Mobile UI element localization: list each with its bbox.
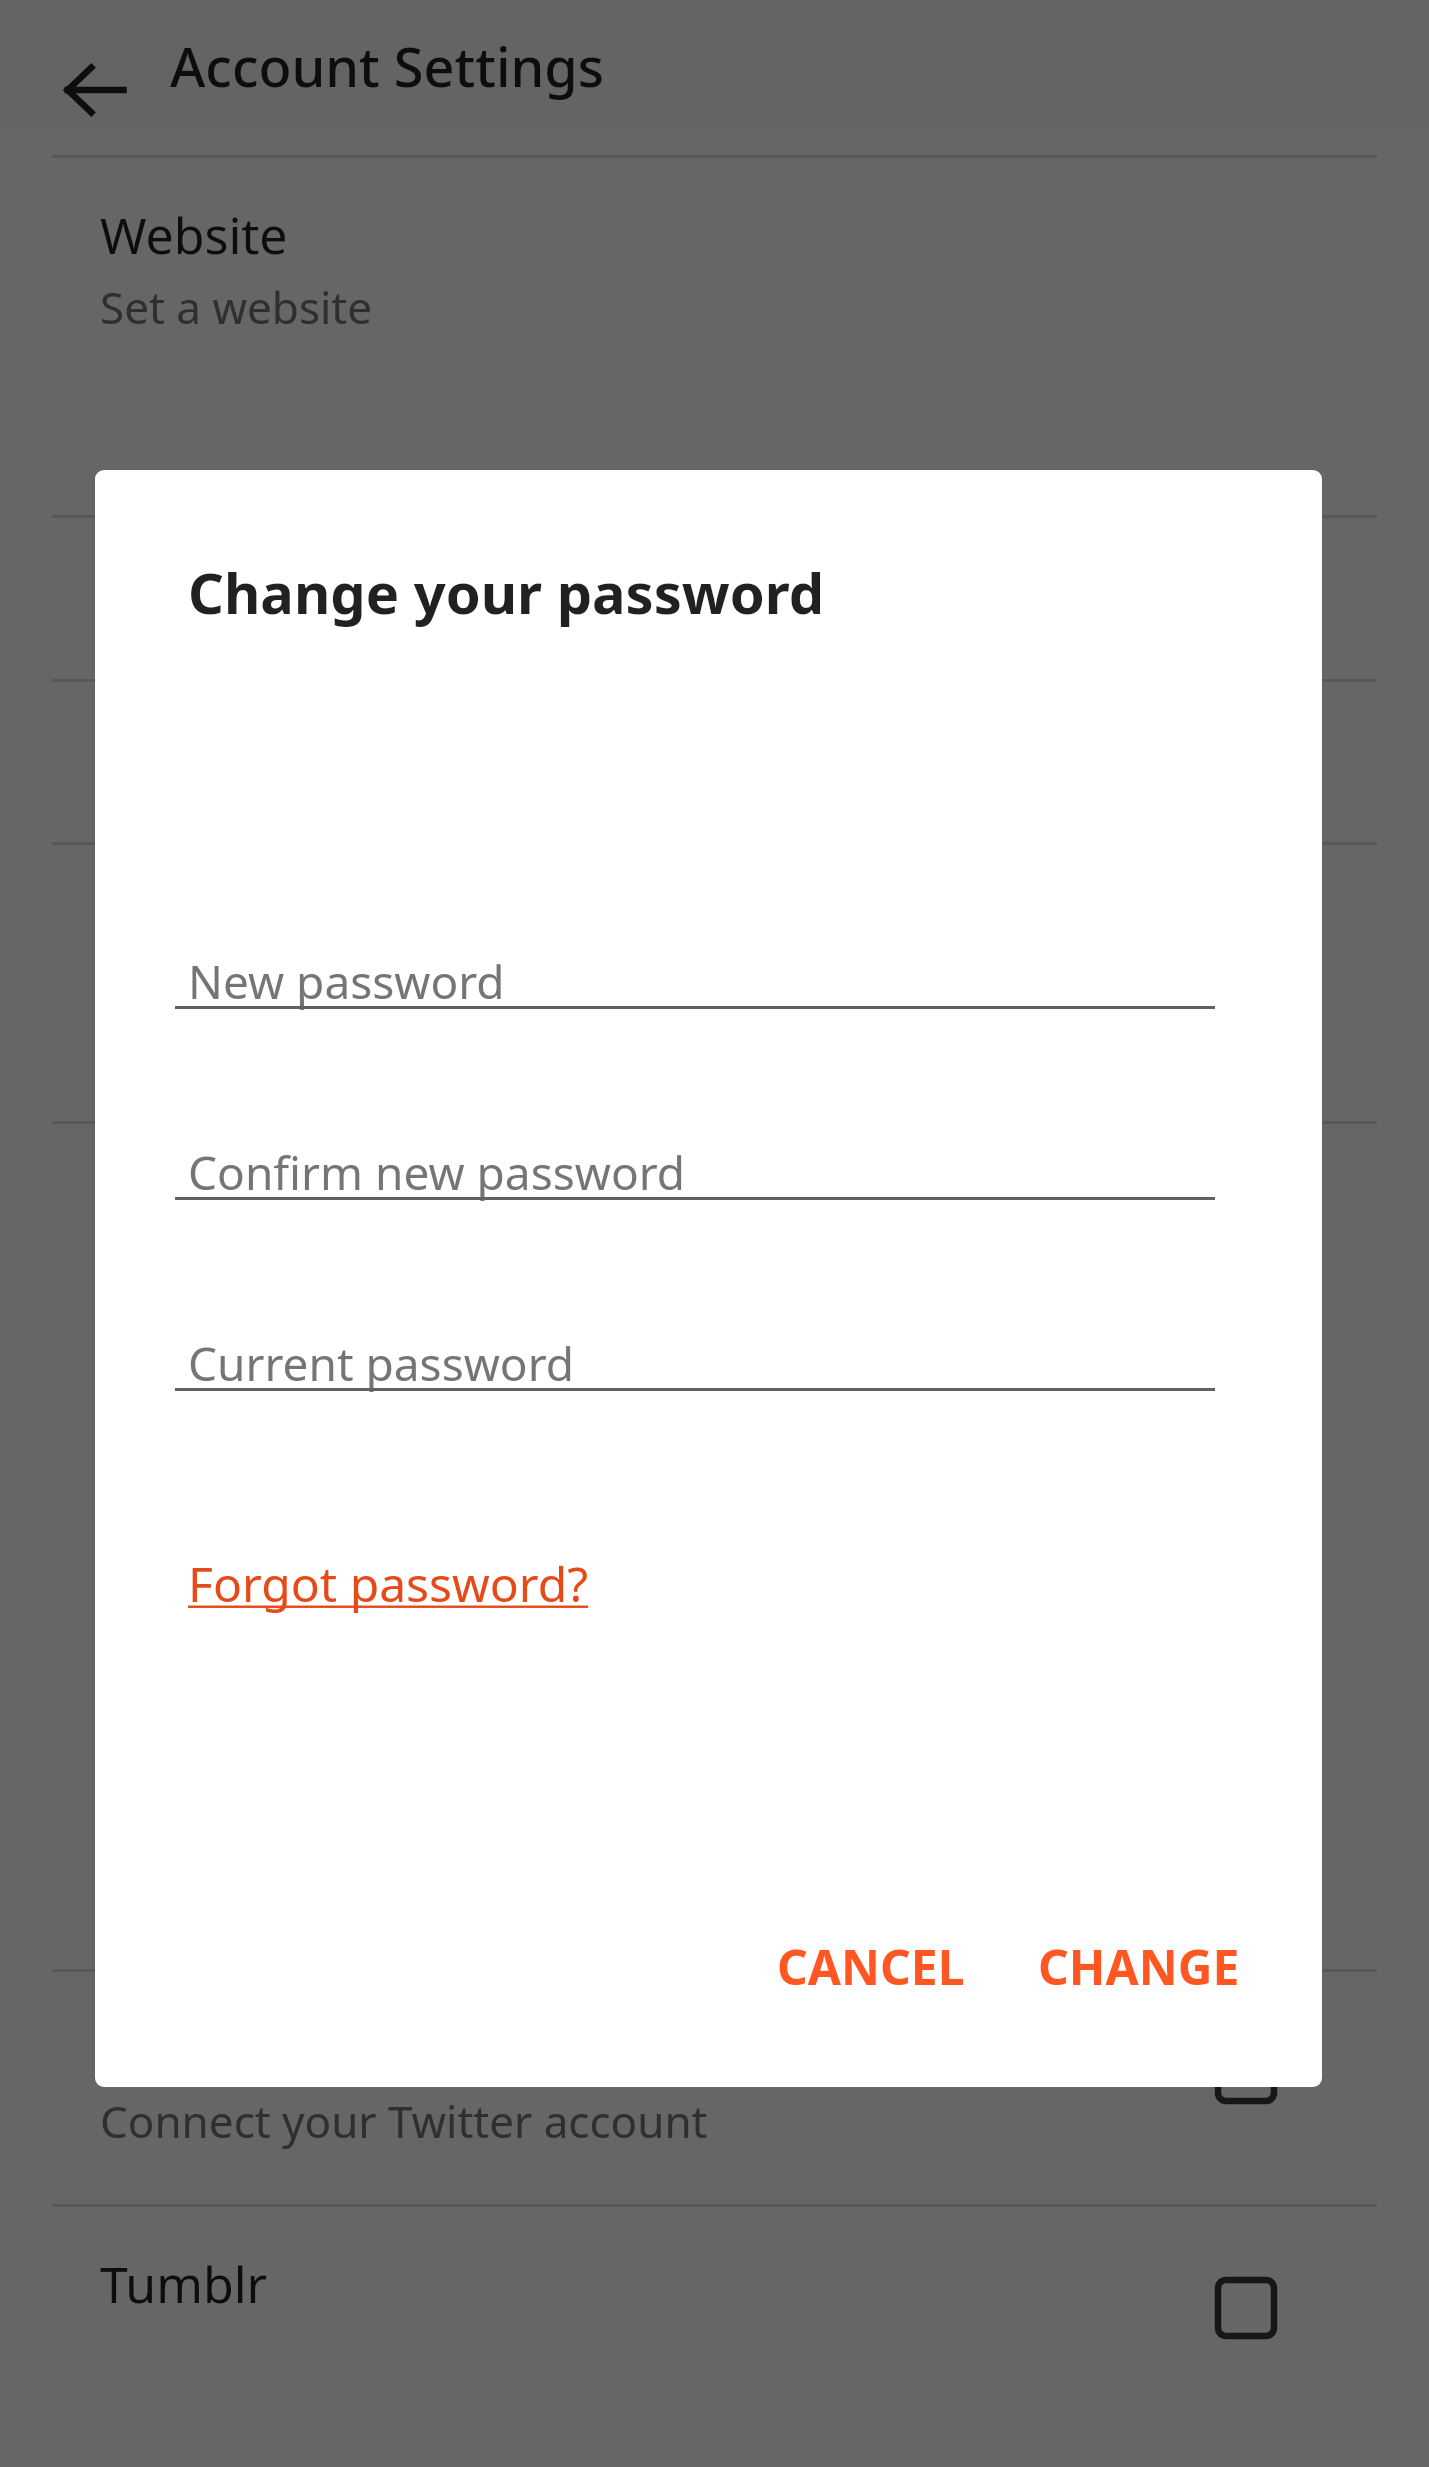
staticText: Account Settings [170, 29, 605, 103]
staticText: Connect your Twitter account [100, 2091, 708, 2151]
button[interactable] [0, 518, 1429, 679]
button[interactable]: CHANGE [1014, 1916, 1264, 2017]
button[interactable]: CANCEL [753, 1916, 989, 2017]
button[interactable]: Twitter [0, 1972, 1429, 2204]
staticText: Confirm new password [188, 1141, 686, 1204]
staticText: Forgot password? [188, 1551, 589, 1616]
button[interactable]: Tumblr toggle [1215, 2277, 1277, 2339]
button[interactable]: Tumblr [0, 2207, 1429, 2439]
staticText: Website [100, 201, 288, 269]
button[interactable]: Website [0, 158, 1429, 515]
button[interactable]: Forgot password? [188, 1551, 589, 1616]
staticText: Tumblr [100, 2250, 268, 2318]
staticText: CANCEL [777, 1934, 965, 1999]
button[interactable] [0, 682, 1429, 842]
staticText: Change your password [188, 554, 825, 630]
staticText: CHANGE [1038, 1934, 1240, 1999]
staticText: New password [188, 950, 505, 1013]
staticText: Current password [188, 1332, 575, 1395]
button[interactable] [0, 845, 1429, 1121]
button[interactable]: Twitter toggle [1215, 2042, 1277, 2104]
button[interactable]: Back [40, 35, 150, 145]
staticText: Set a website [100, 277, 373, 337]
